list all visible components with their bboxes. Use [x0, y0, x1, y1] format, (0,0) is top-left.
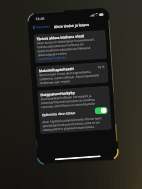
staticText: tehonhallintaominaisuuksia ei sovelleta. [41, 97, 96, 105]
button[interactable]: Optimoitu akun lataus [38, 105, 111, 119]
staticText: Vaihda valtuutetussa huollossa tai [37, 42, 84, 49]
staticText: odottaa 80 %:n ylityksen lataamisessa. [43, 125, 95, 132]
staticText: Tärkeä akkua koskeva viesti [36, 33, 85, 41]
button[interactable]: Lisätietoja huollosta [38, 53, 104, 61]
staticText: akkukorjausta varten. [38, 51, 68, 57]
other: Back [33, 25, 35, 29]
staticText: Maksimikapasiteetti [39, 66, 74, 73]
staticText: Apple-huoltoon oikeutetussa liikkeessä [37, 46, 90, 53]
staticText: suhteessa uuteen akkuun. Akun kapasiteet… [39, 73, 99, 81]
staticText: Lisätietoja huollosta [38, 55, 67, 61]
staticText: Akun tiedot ja lataus [54, 22, 90, 29]
staticText: Asetukset [36, 24, 50, 29]
staticText: Akun kunto on heikentynyt huomattavasti. [37, 37, 95, 45]
staticText: päivittäisestä latausrutiinistasi, jotta… [42, 120, 101, 128]
staticText: heikkenee ajan myötä. [40, 79, 71, 85]
staticText: Huippusuorituskyky [40, 90, 76, 97]
button[interactable]: Back [30, 21, 52, 33]
staticText: 14:41 [35, 16, 45, 21]
staticText: 76 % [98, 65, 105, 69]
staticText: Huomaa, että iPhone voi ottaa käyttöön [41, 102, 95, 109]
staticText: Optimoitu akun lataus [42, 111, 76, 117]
staticText: Akun käyttöiän pidentämiseksi iPhone opp… [42, 116, 102, 124]
staticText: Tämä mittari kuvaa akun kapasiteettia [39, 70, 91, 77]
staticText: Suorituskykyä hallitaan normaalisti ja [41, 94, 92, 101]
